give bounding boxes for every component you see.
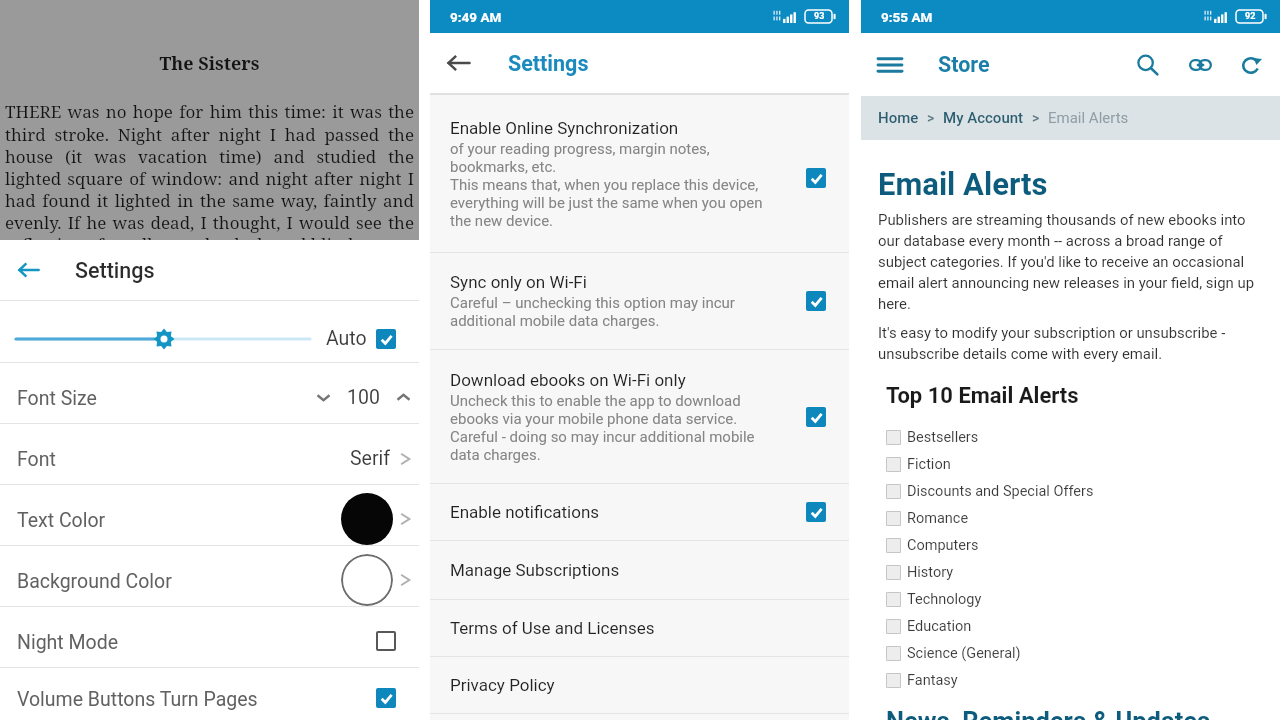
button[interactable]: Education bbox=[878, 613, 1263, 640]
button[interactable]: Science (General) bbox=[878, 640, 1263, 667]
button[interactable]: Computers bbox=[878, 532, 1263, 559]
button[interactable]: Background Color bbox=[0, 546, 419, 606]
button[interactable]: Checkbox bbox=[806, 407, 826, 427]
staticText: Fiction bbox=[907, 456, 951, 473]
button[interactable]: Romance bbox=[878, 505, 1263, 532]
staticText: Email Alerts bbox=[878, 166, 1048, 202]
button[interactable]: Checkbox bbox=[376, 329, 396, 349]
button[interactable]: Home bbox=[878, 109, 919, 127]
staticText: Technology bbox=[907, 591, 982, 608]
staticText: Volume Buttons Turn Pages bbox=[17, 688, 258, 711]
button[interactable]: Download ebooks on Wi-Fi only bbox=[430, 350, 849, 483]
button[interactable]: Back bbox=[0, 240, 419, 300]
button[interactable]: Checkbox bbox=[806, 502, 826, 522]
staticText: Top 10 Email Alerts bbox=[886, 383, 1079, 409]
staticText: Settings bbox=[75, 258, 155, 283]
staticText: Publishers are streaming thousands of ne… bbox=[878, 211, 1263, 313]
button[interactable]: Font bbox=[0, 424, 419, 484]
staticText: > bbox=[927, 110, 935, 126]
button[interactable]: My Account bbox=[943, 109, 1024, 127]
button[interactable]: History bbox=[878, 559, 1263, 586]
button[interactable]: Checkbox bbox=[376, 688, 396, 708]
staticText: Science (General) bbox=[907, 645, 1021, 662]
button[interactable]: Font Size bbox=[0, 363, 419, 423]
staticText: Terms of Use and Licenses bbox=[450, 618, 655, 638]
staticText: Enable Online Synchronization bbox=[450, 118, 679, 138]
staticText: History bbox=[907, 564, 954, 581]
staticText: 9:49 AM bbox=[450, 9, 502, 25]
staticText: 93 bbox=[814, 11, 825, 22]
button[interactable]: Discounts and Special Offers bbox=[878, 478, 1263, 505]
button[interactable]: Fantasy bbox=[878, 667, 1263, 694]
staticText: Text Color bbox=[17, 509, 106, 532]
staticText: Bestsellers bbox=[907, 429, 979, 446]
button[interactable]: Enable Online Synchronization bbox=[430, 95, 849, 252]
staticText: Settings bbox=[508, 51, 589, 76]
button[interactable]: Refresh bbox=[1226, 39, 1278, 91]
button[interactable]: Fiction bbox=[878, 451, 1263, 478]
staticText: Font Size bbox=[17, 387, 97, 410]
staticText: Romance bbox=[907, 510, 969, 527]
staticText: Auto bbox=[326, 327, 367, 350]
staticText: Uncheck this to enable the app to downlo… bbox=[450, 392, 755, 464]
button[interactable]: Night Mode bbox=[0, 607, 419, 667]
button[interactable]: Volume Buttons Turn Pages bbox=[0, 668, 419, 720]
button[interactable]: Back bbox=[0, 240, 58, 300]
other: Back bbox=[18, 259, 40, 281]
staticText: Computers bbox=[907, 537, 979, 554]
button[interactable]: Enable notifications bbox=[430, 484, 849, 540]
staticText: THERE was no hope for him this time: it … bbox=[5, 100, 414, 240]
button[interactable]: Checkbox bbox=[806, 291, 826, 311]
staticText: Manage Subscriptions bbox=[450, 560, 620, 580]
button[interactable]: Sync only on Wi-Fi bbox=[430, 253, 849, 349]
staticText: The Sisters bbox=[5, 51, 414, 76]
staticText: Sync only on Wi-Fi bbox=[450, 272, 587, 292]
staticText: News, Reminders & Updates bbox=[886, 706, 1211, 720]
staticText: of your reading progress, margin notes, … bbox=[450, 140, 763, 230]
staticText: Careful – unchecking this option may inc… bbox=[450, 294, 735, 330]
staticText: 92 bbox=[1245, 11, 1256, 22]
other: Back bbox=[447, 51, 471, 75]
staticText: Serif bbox=[350, 447, 391, 470]
button[interactable]: Technology bbox=[878, 586, 1263, 613]
staticText: Fantasy bbox=[907, 672, 958, 689]
button[interactable]: Privacy Policy bbox=[430, 657, 849, 713]
staticText: Discounts and Special Offers bbox=[907, 483, 1094, 500]
staticText: > bbox=[1032, 110, 1040, 126]
staticText: Privacy Policy bbox=[450, 675, 555, 695]
staticText: Night Mode bbox=[17, 631, 119, 654]
staticText: Education bbox=[907, 618, 972, 635]
staticText: Enable notifications bbox=[450, 502, 600, 522]
button[interactable]: Search bbox=[1122, 39, 1174, 91]
staticText: Background Color bbox=[17, 570, 172, 593]
button[interactable]: Terms of Use and Licenses bbox=[430, 600, 849, 656]
button[interactable]: Back bbox=[430, 33, 488, 93]
staticText: 100 bbox=[347, 386, 380, 409]
button[interactable]: Manage Subscriptions bbox=[430, 541, 849, 599]
button[interactable]: Checkbox bbox=[806, 168, 826, 188]
staticText: It's easy to modify your subscription or… bbox=[878, 324, 1263, 363]
button[interactable]: Bestsellers bbox=[878, 424, 1263, 451]
button[interactable]: Link bbox=[1174, 39, 1226, 91]
button[interactable]: Menu bbox=[861, 33, 919, 96]
button[interactable]: Text Color bbox=[0, 485, 419, 545]
staticText: 9:55 AM bbox=[881, 9, 933, 25]
staticText: Font bbox=[17, 448, 56, 471]
staticText: Store bbox=[938, 52, 990, 77]
staticText: Email Alerts bbox=[1048, 109, 1129, 127]
staticText: Download ebooks on Wi-Fi only bbox=[450, 370, 686, 390]
